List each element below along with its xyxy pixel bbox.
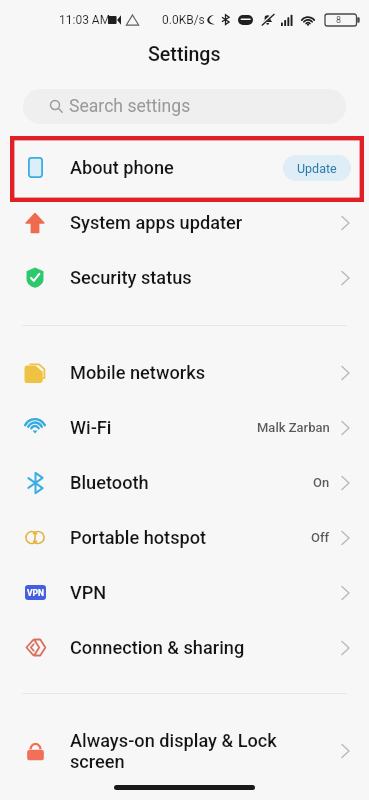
- button[interactable]: Mobile networks: [0, 345, 369, 400]
- staticText: Bluetooth: [70, 472, 313, 493]
- staticText: Malk Zarban: [257, 420, 330, 435]
- button[interactable]: Bluetooth: [0, 455, 369, 510]
- button[interactable]: Security status: [0, 250, 369, 305]
- button[interactable]: Update: [283, 155, 351, 181]
- staticText: Connection & sharing: [70, 637, 340, 658]
- staticText: On: [313, 475, 330, 490]
- staticText: Off: [311, 530, 330, 545]
- staticText: VPN: [27, 588, 45, 598]
- button[interactable]: About phone: [0, 140, 369, 195]
- staticText: Search settings: [69, 96, 191, 117]
- staticText: 11:03 AM: [59, 13, 111, 27]
- button[interactable]: Search settings: [23, 89, 346, 124]
- staticText: Settings: [148, 43, 221, 66]
- button[interactable]: Portable hotspot: [0, 510, 369, 565]
- staticText: 0.0KB/s: [162, 13, 205, 27]
- button[interactable]: Always-on display & Lock screen: [0, 714, 369, 788]
- staticText: About phone: [70, 157, 283, 178]
- button[interactable]: Wi-Fi: [0, 400, 369, 455]
- button[interactable]: Connection & sharing: [0, 620, 369, 675]
- staticText: Portable hotspot: [70, 527, 311, 548]
- staticText: Mobile networks: [70, 362, 340, 383]
- button[interactable]: System apps updater: [0, 195, 369, 250]
- staticText: Update: [297, 161, 337, 176]
- staticText: System apps updater: [70, 212, 340, 233]
- staticText: Wi-Fi: [70, 417, 257, 438]
- staticText: VPN: [70, 582, 340, 603]
- staticText: Security status: [70, 267, 340, 288]
- staticText: 8: [336, 15, 342, 26]
- staticText: Always-on display & Lock screen: [70, 730, 340, 772]
- button[interactable]: VPN: [0, 565, 369, 620]
